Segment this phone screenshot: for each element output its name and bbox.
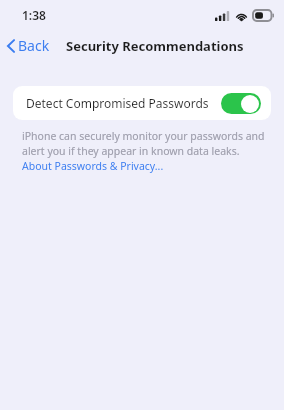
staticText: iPhone can securely monitor your passwor…	[22, 129, 268, 173]
staticText: 1:38	[22, 7, 46, 23]
staticText: Back	[18, 36, 50, 55]
button[interactable]: Back	[0, 32, 56, 59]
staticText: Security Recommendations	[66, 37, 244, 55]
button[interactable]: Detect Compromised Passwords	[13, 86, 271, 120]
staticText: Detect Compromised Passwords	[26, 95, 221, 111]
button[interactable]: Detect Compromised Passwords toggle, on	[221, 93, 261, 114]
